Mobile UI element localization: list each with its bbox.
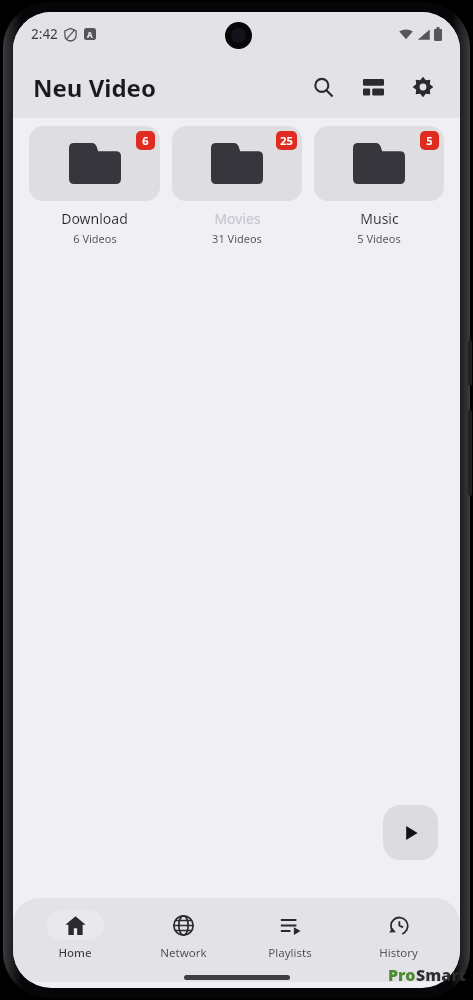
staticText: Smart [416,964,467,986]
button[interactable]: Play [383,805,438,860]
button[interactable]: Search [302,66,344,108]
button[interactable]: 6 [29,126,160,246]
staticText: 5 Videos [357,231,401,246]
staticText: 6 [142,133,149,148]
staticText: Movies [214,209,261,228]
button[interactable]: 5 [314,126,444,246]
staticText: 25 [280,133,293,148]
staticText: 5 [426,133,433,148]
button[interactable]: Change layout [352,66,394,108]
button[interactable]: 25 [172,126,302,246]
staticText: Home [58,945,92,961]
staticText: A [87,29,93,40]
staticText: History [379,945,418,961]
button[interactable]: Home [29,906,121,965]
staticText: Network [160,945,207,961]
staticText: Download [61,209,128,228]
staticText: Playlists [268,945,312,961]
staticText: 31 Videos [212,231,262,246]
button[interactable]: Network [137,906,229,965]
button[interactable]: Playlists [244,906,336,965]
staticText: Pro [388,964,416,986]
staticText: Music [360,209,399,228]
button[interactable]: Settings [402,66,444,108]
button[interactable]: History [352,906,444,965]
staticText: 6 Videos [73,231,117,246]
staticText: 2:42 [31,25,58,43]
staticText: Neu Video [33,71,156,104]
